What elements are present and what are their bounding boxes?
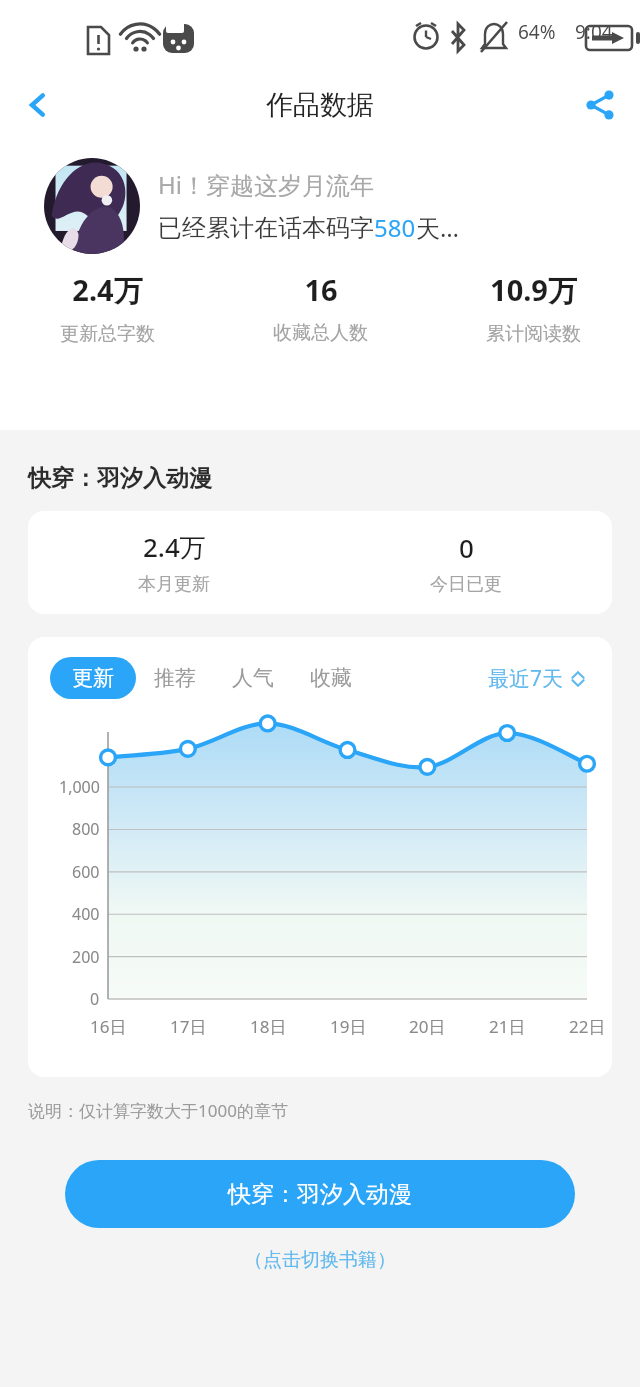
staticText: 说明：仅计算字数大于1000的章节 [28, 1099, 288, 1122]
staticText: 2.4万 [72, 270, 143, 310]
button[interactable]: Hi！穿越这岁月流年 [44, 158, 640, 254]
staticText: 快穿：羽汐入动漫 [28, 464, 212, 493]
staticText: 快穿：羽汐入动漫 [228, 1180, 412, 1209]
staticText: Hi！穿越这岁月流年 [158, 168, 374, 201]
button[interactable]: 2.4万 [28, 511, 612, 614]
staticText: 收藏总人数 [273, 321, 368, 345]
staticText: 9:04 [575, 19, 613, 45]
button[interactable]: 16 [214, 270, 427, 345]
staticText: 600 [72, 861, 100, 883]
button[interactable]: 人气 [214, 657, 292, 699]
staticText: 200 [72, 946, 100, 968]
staticText: 收藏 [310, 665, 352, 691]
staticText: 最近7天 [488, 664, 564, 693]
staticText: 更新 [72, 665, 114, 691]
button[interactable]: 推荐 [136, 657, 214, 699]
staticText: 400 [72, 903, 100, 925]
button[interactable]: 快穿：羽汐入动漫 [65, 1160, 575, 1228]
staticText: 17日 [170, 1015, 207, 1038]
staticText: 19日 [330, 1015, 367, 1038]
staticText: 2.4万 [143, 529, 206, 565]
staticText: 20日 [409, 1015, 446, 1038]
staticText: 0 [90, 988, 100, 1010]
staticText: 本月更新 [138, 573, 210, 596]
staticText: 580 [374, 211, 416, 244]
staticText: 18日 [250, 1015, 287, 1038]
staticText: 64% [518, 19, 556, 45]
staticText: 16日 [90, 1015, 127, 1038]
staticText: 0 [459, 530, 474, 565]
staticText: 800 [72, 818, 100, 840]
button[interactable]: （点击切换书籍） [238, 1246, 402, 1274]
button[interactable]: 10.9万 [427, 270, 640, 346]
button[interactable]: 收藏 [292, 657, 370, 699]
staticText: 作品数据 [266, 88, 374, 122]
button[interactable]: Share [574, 79, 626, 131]
button[interactable]: 2.4万 [0, 270, 214, 346]
staticText: 22日 [569, 1015, 606, 1038]
staticText: 推荐 [154, 665, 196, 691]
staticText: 10.9万 [490, 270, 577, 310]
staticText: 天… [416, 211, 459, 244]
staticText: 16 [304, 270, 338, 309]
staticText: 累计阅读数 [486, 322, 581, 346]
button[interactable]: Back [12, 79, 64, 131]
staticText: 21日 [489, 1015, 526, 1038]
button[interactable]: 最近7天 [484, 658, 590, 699]
staticText: 人气 [232, 665, 274, 691]
staticText: 今日已更 [430, 573, 502, 596]
staticText: 已经累计在话本码字 [158, 213, 374, 243]
staticText: 1,000 [59, 776, 100, 798]
staticText: 更新总字数 [60, 322, 155, 346]
button[interactable]: 更新 [50, 657, 136, 699]
